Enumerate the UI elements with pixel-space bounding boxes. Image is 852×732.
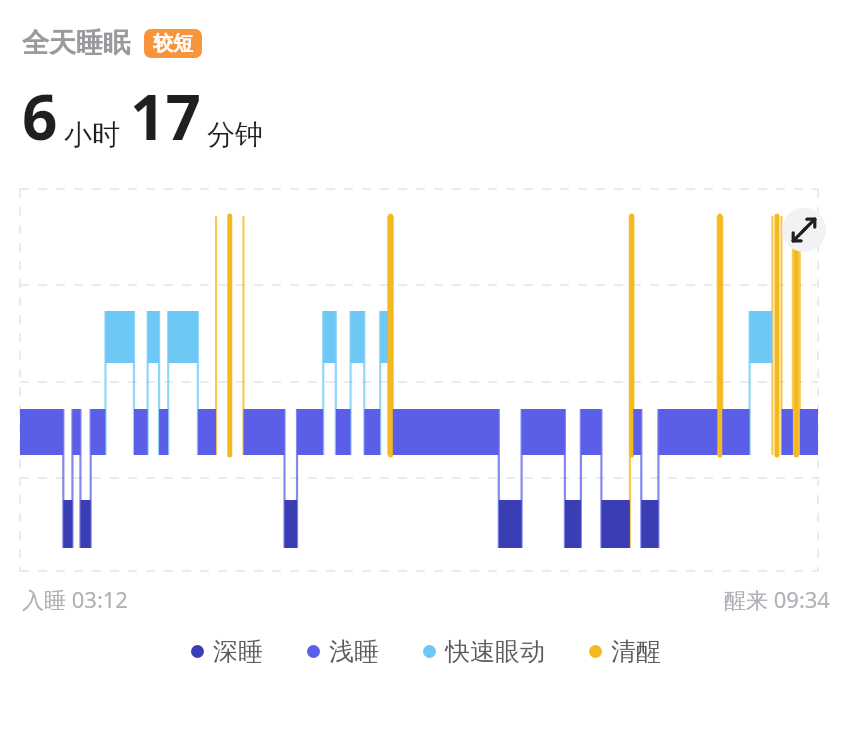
button[interactable]: 清醒 xyxy=(589,636,661,667)
button[interactable]: 浅睡 xyxy=(307,636,379,667)
staticText: 快速眼动 xyxy=(445,636,545,667)
button[interactable]: 深睡 xyxy=(191,636,263,667)
staticText: 清醒 xyxy=(611,636,661,667)
button[interactable]: Expand chart xyxy=(782,208,826,252)
button[interactable]: 全天睡眠 xyxy=(22,26,202,60)
staticText: 浅睡 xyxy=(329,636,379,667)
staticText: 6 xyxy=(22,74,58,158)
staticText: 入睡 03:12 xyxy=(22,584,128,614)
staticText: 全天睡眠 xyxy=(22,26,130,60)
staticText: 深睡 xyxy=(213,636,263,667)
staticText: 醒来 09:34 xyxy=(724,584,830,614)
staticText: 分钟 xyxy=(207,117,263,152)
staticText: 17 xyxy=(130,74,201,158)
staticText: 小时 xyxy=(64,117,120,152)
staticText: 较短 xyxy=(153,31,193,56)
button[interactable]: 快速眼动 xyxy=(423,636,545,667)
